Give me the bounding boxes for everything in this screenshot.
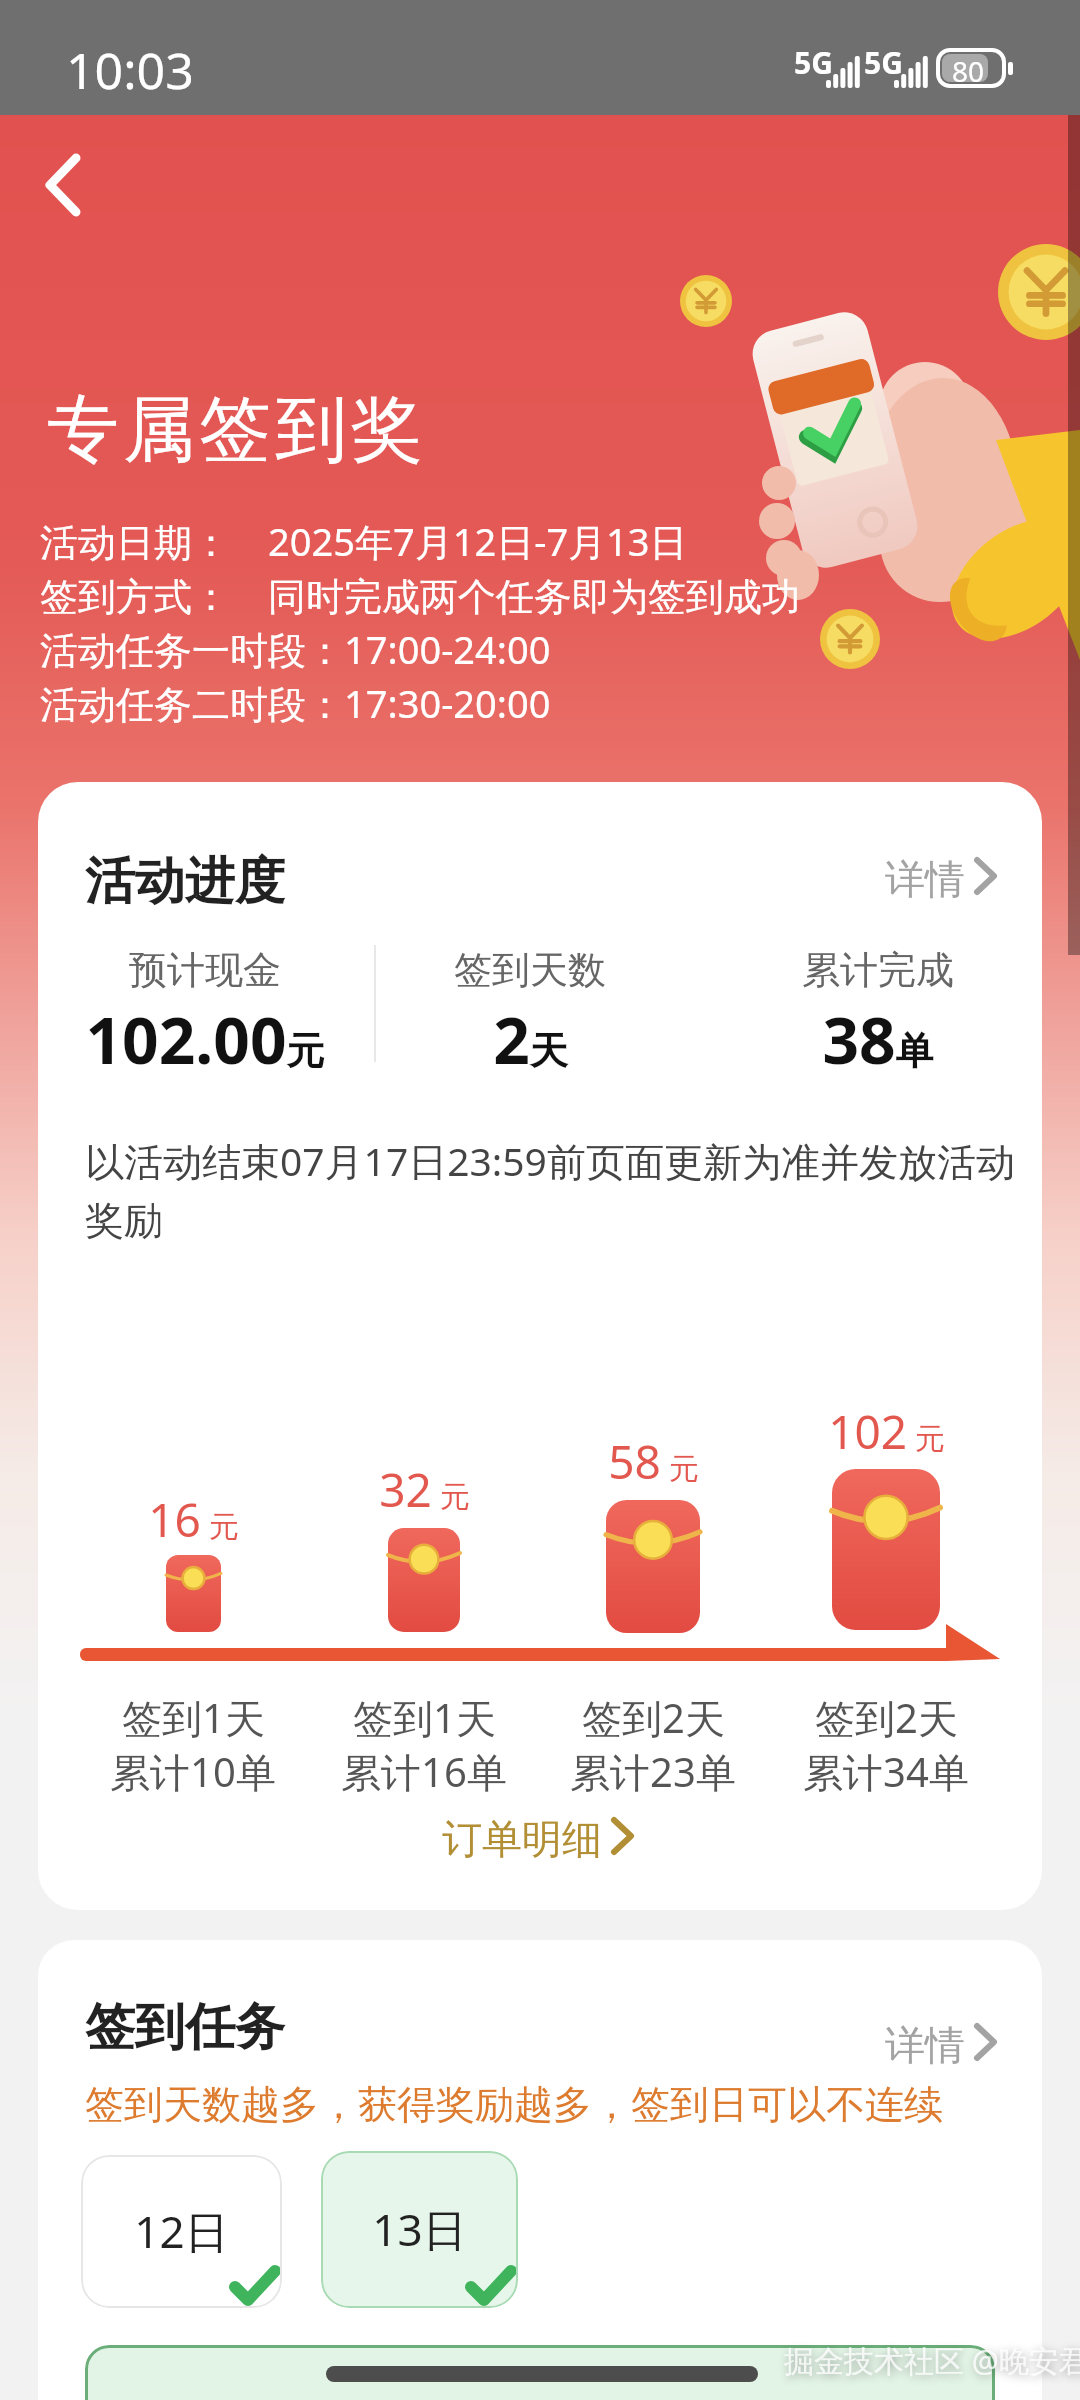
staticText: 以活动结束07月17日23:59前页面更新为准并发放活动: [85, 1134, 1015, 1187]
staticText: 详情: [885, 854, 965, 904]
staticText: 16 元: [148, 1488, 239, 1551]
staticText: 80: [952, 52, 985, 90]
staticText: 累计23单: [570, 1744, 736, 1799]
staticText: 累计10单: [110, 1744, 276, 1799]
button[interactable]: 详情: [883, 846, 1042, 902]
button[interactable]: [40, 150, 90, 220]
staticText: 102.00元: [85, 996, 325, 1083]
staticText: 签到1天: [353, 1690, 496, 1745]
staticText: 专属签到奖: [45, 385, 425, 476]
staticText: 累计34单: [803, 1744, 969, 1799]
button[interactable]: 详情: [883, 2012, 1042, 2068]
staticText: 12日: [134, 2201, 229, 2261]
staticText: 掘金技术社区 @晚安君: [784, 2340, 1080, 2381]
button[interactable]: 订单明细: [442, 1810, 682, 1870]
staticText: 10:03: [66, 36, 194, 104]
staticText: 签到2天: [582, 1690, 725, 1745]
button[interactable]: 12日: [81, 2155, 282, 2308]
staticText: 签到方式： 同时完成两个任务即为签到成功: [40, 569, 800, 621]
staticText: 累计16单: [341, 1744, 507, 1799]
staticText: 签到任务: [85, 1996, 285, 2059]
staticText: 签到天数: [454, 946, 606, 994]
staticText: 活动任务二时段：17:30-20:00: [40, 677, 551, 729]
staticText: 订单明细: [442, 1814, 602, 1864]
staticText: 签到1天: [122, 1690, 265, 1745]
staticText: 活动任务一时段：17:00-24:00: [40, 623, 551, 675]
staticText: 13日: [372, 2199, 467, 2259]
staticText: 活动进度: [85, 850, 285, 913]
staticText: 5G: [864, 42, 903, 83]
staticText: 累计完成: [802, 946, 954, 994]
staticText: 5G: [794, 42, 833, 83]
staticText: 32 元: [379, 1458, 470, 1521]
staticText: 奖励: [85, 1196, 163, 1245]
staticText: 预计现金: [129, 946, 281, 994]
staticText: 102 元: [828, 1400, 945, 1463]
staticText: 活动日期： 2025年7月12日-7月13日: [40, 515, 688, 567]
button[interactable]: 13日: [321, 2151, 518, 2308]
staticText: 58 元: [608, 1430, 699, 1493]
staticText: 签到2天: [815, 1690, 958, 1745]
staticText: 详情: [885, 2020, 965, 2070]
staticText: 38单: [822, 996, 934, 1083]
staticText: 2天: [493, 996, 568, 1083]
staticText: 签到天数越多，获得奖励越多，签到日可以不连续: [85, 2080, 943, 2129]
